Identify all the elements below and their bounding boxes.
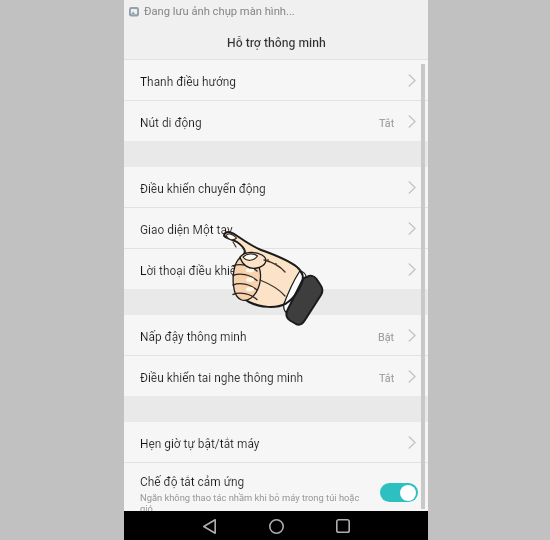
button[interactable]: Hẹn giờ tự bật/tắt máy [124,422,428,462]
button[interactable]: Chế độ tắt cảm ứng toggle [380,483,418,502]
staticText: Nấp đậy thông minh [140,330,378,344]
button[interactable]: Chế độ tắt cảm ứng [124,463,428,523]
button[interactable]: Home [262,512,290,540]
staticText: Nút di động [140,116,379,130]
staticText: Chế độ tắt cảm ứng [140,475,245,489]
staticText: Tắt [379,372,395,385]
staticText: Ngăn không thao tác nhầm khi bỏ máy tron… [140,492,362,514]
staticText: Tắt [379,117,395,130]
button[interactable]: Nấp đậy thông minh [124,315,428,355]
button[interactable]: Thanh điều hướng [124,60,428,100]
button[interactable]: Recent apps [329,512,357,540]
staticText: Bật [378,331,395,344]
button[interactable]: Giao diện Một tay [124,208,428,248]
button[interactable]: Back [195,512,223,540]
staticText: Lời thoại điều khiển [140,264,408,278]
staticText: Hẹn giờ tự bật/tắt máy [140,437,408,451]
staticText: Giao diện Một tay [140,223,408,237]
staticText: Đang lưu ảnh chụp màn hình... [144,5,295,18]
button[interactable]: Nút di động [124,101,428,141]
button[interactable]: Điều khiển tai nghe thông minh [124,356,428,396]
button[interactable]: Điều khiển chuyển động [124,167,428,207]
staticText: Thanh điều hướng [140,75,408,89]
staticText: Hỗ trợ thông minh [227,36,326,50]
staticText: Điều khiển tai nghe thông minh [140,371,379,385]
button[interactable]: Lời thoại điều khiển [124,249,428,289]
staticText: Điều khiển chuyển động [140,182,408,196]
